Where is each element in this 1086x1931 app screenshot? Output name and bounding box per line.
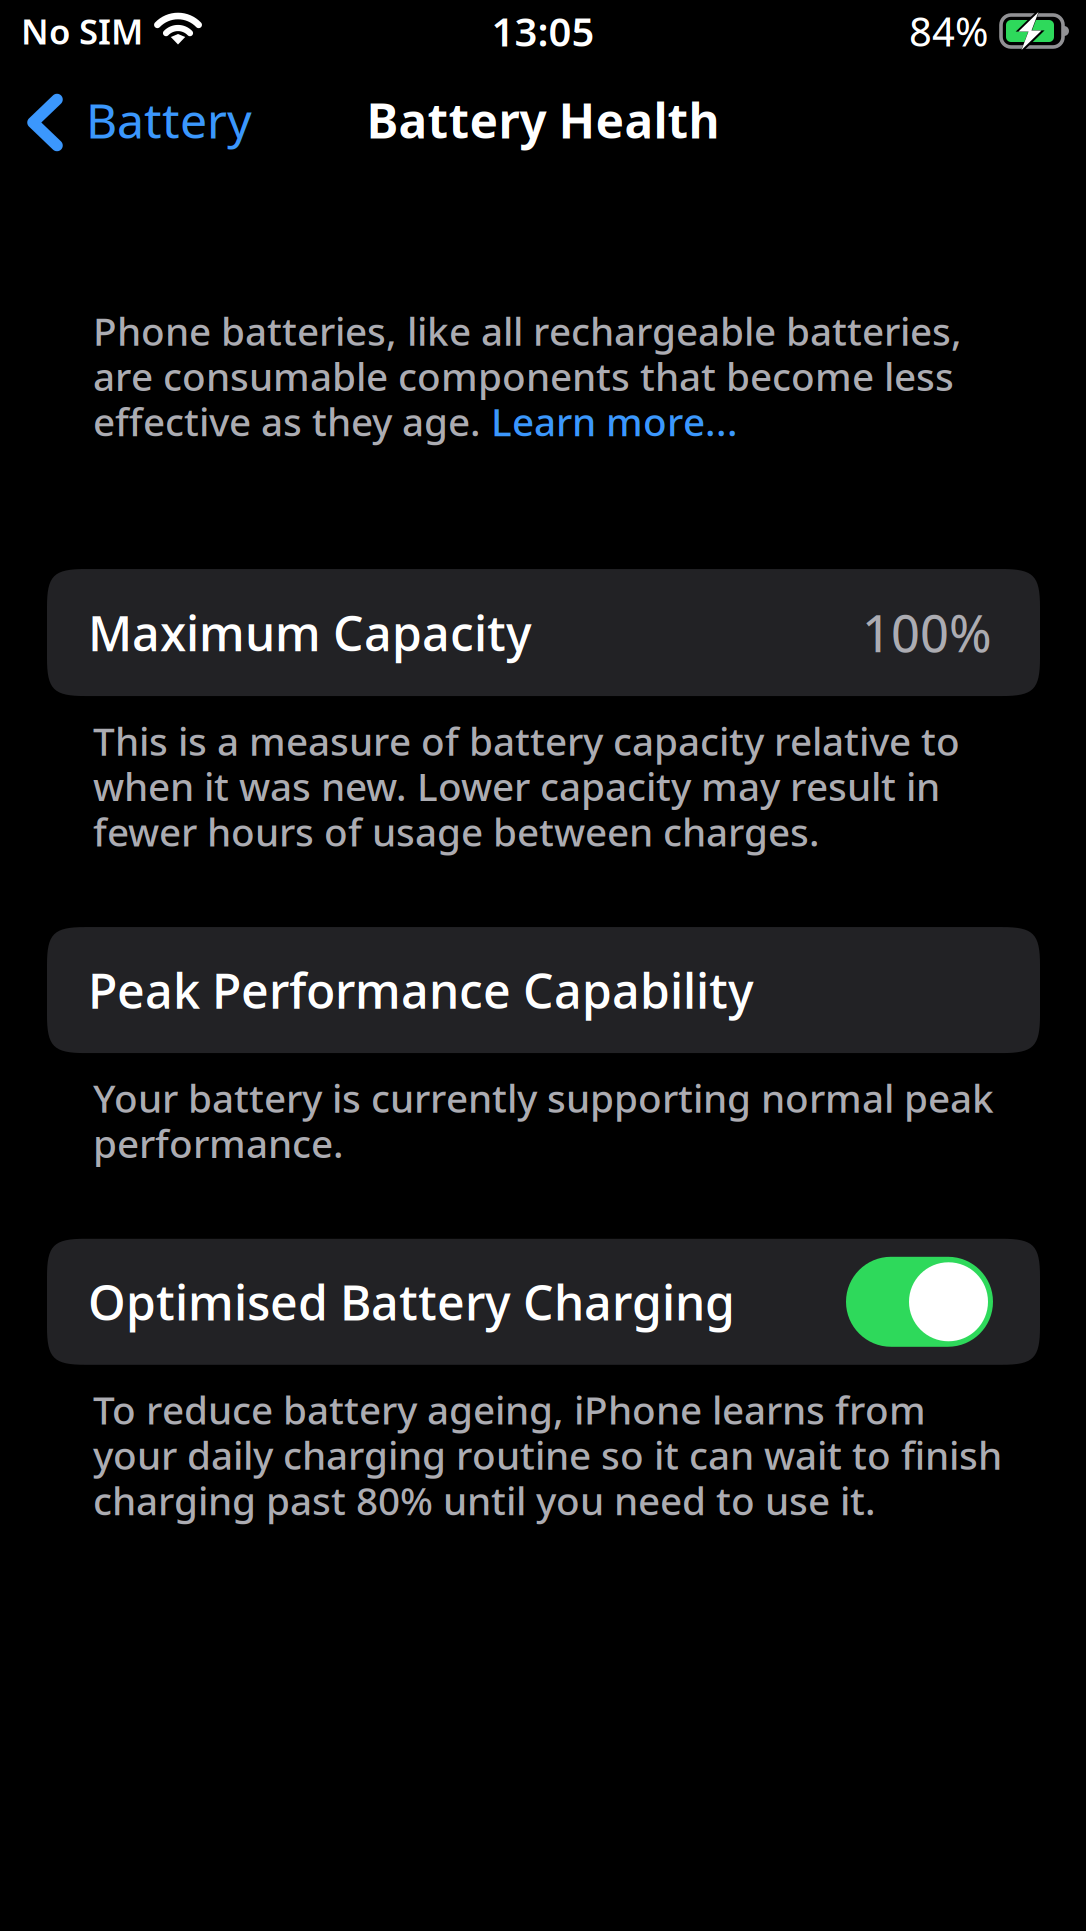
staticText: Battery Health — [366, 88, 719, 152]
staticText: No SIM — [21, 8, 143, 54]
button[interactable]: Optimised Battery Charging, on — [846, 1257, 993, 1347]
button[interactable]: Peak Performance Capability — [47, 927, 1040, 1053]
staticText: 100% — [862, 599, 992, 666]
button[interactable]: Maximum Capacity — [47, 569, 1040, 696]
staticText: This is a measure of battery capacity re… — [93, 715, 960, 857]
staticText: 13:05 — [491, 4, 594, 57]
button[interactable]: Battery — [0, 88, 252, 152]
staticText: Battery — [86, 88, 252, 152]
staticText: To reduce battery ageing, iPhone learns … — [93, 1384, 1002, 1526]
staticText: Peak Performance Capability — [88, 958, 754, 1022]
staticText: Phone batteries, like all rechargeable b… — [93, 305, 962, 447]
staticText: Maximum Capacity — [88, 601, 532, 664]
staticText: Your battery is currently supporting nor… — [93, 1072, 994, 1169]
button[interactable]: Optimised Battery Charging — [47, 1239, 1040, 1365]
staticText: Optimised Battery Charging — [88, 1270, 735, 1334]
staticText: 84% — [909, 4, 988, 57]
